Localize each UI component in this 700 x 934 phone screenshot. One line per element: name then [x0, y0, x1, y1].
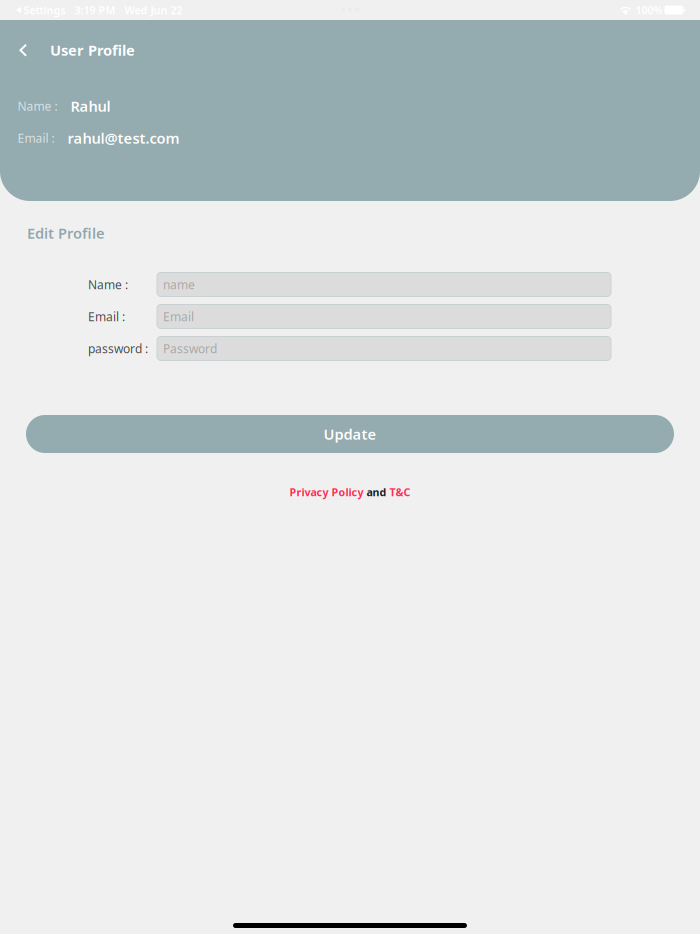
- staticText: Settings: [23, 3, 65, 17]
- staticText: User Profile: [50, 40, 135, 60]
- button[interactable]: Password: [157, 336, 611, 360]
- staticText: Wed Jun 22: [124, 3, 182, 17]
- staticText: Edit Profile: [27, 223, 105, 243]
- staticText: Password: [163, 340, 217, 356]
- staticText: Privacy Policy: [289, 485, 363, 499]
- staticText: Email :: [88, 308, 125, 324]
- staticText: name: [163, 276, 195, 292]
- button[interactable]: Email: [157, 304, 611, 328]
- staticText: Update: [323, 424, 376, 444]
- staticText: rahul@test.com: [67, 128, 179, 148]
- staticText: Name :: [88, 276, 128, 292]
- staticText: Email :: [17, 130, 54, 146]
- staticText: 3:19 PM: [74, 3, 115, 17]
- button[interactable]: Update: [26, 415, 674, 453]
- button[interactable]: name: [157, 272, 611, 296]
- staticText: Email: [163, 308, 194, 324]
- staticText: and: [363, 485, 389, 499]
- button[interactable]: Back: [8, 34, 38, 66]
- staticText: 100%: [635, 3, 662, 17]
- button[interactable]: Privacy Policy: [289, 485, 363, 499]
- button[interactable]: T&C: [389, 485, 410, 499]
- staticText: Rahul: [70, 96, 110, 116]
- staticText: Name :: [17, 98, 57, 114]
- staticText: password :: [88, 340, 148, 356]
- staticText: T&C: [389, 485, 410, 499]
